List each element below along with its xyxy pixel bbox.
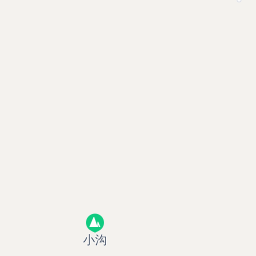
staticText: 小沟: [82, 232, 106, 247]
button[interactable]: 小沟: [83, 214, 107, 247]
staticText: 小沟: [82, 233, 106, 247]
staticText: 小沟: [83, 233, 107, 248]
staticText: 小沟: [83, 232, 107, 247]
staticText: 小沟: [82, 233, 106, 248]
button[interactable]: Map marker: [237, 0, 242, 2]
staticText: 小沟: [83, 233, 107, 247]
staticText: 小沟: [84, 233, 108, 247]
staticText: 小沟: [83, 233, 107, 248]
staticText: 小沟: [83, 232, 107, 247]
